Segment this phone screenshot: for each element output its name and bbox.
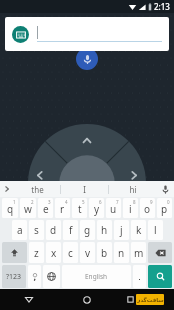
staticText: d <box>50 223 57 237</box>
staticText: 8 <box>133 199 136 205</box>
button[interactable]: k <box>131 220 146 240</box>
button[interactable]: 2 <box>20 198 36 218</box>
button[interactable]: v <box>80 242 95 263</box>
button[interactable]: Voice input <box>76 48 98 70</box>
button[interactable]: Back <box>0 289 58 310</box>
button[interactable]: x <box>46 242 61 263</box>
staticText: 5 <box>82 199 85 205</box>
button[interactable]: Keyboard <box>12 26 29 43</box>
staticText: 9 <box>150 199 153 205</box>
button[interactable]: the <box>14 181 60 197</box>
button[interactable]: 7 <box>106 198 121 218</box>
button[interactable]: 8 <box>123 198 138 218</box>
staticText: v <box>85 246 91 260</box>
button[interactable]: 3 <box>38 198 53 218</box>
staticText: 0 <box>167 199 170 205</box>
staticText: e <box>43 202 49 216</box>
staticText: 3 <box>48 199 51 205</box>
staticText: q <box>7 202 14 216</box>
staticText: 4 <box>65 199 68 205</box>
button[interactable]: I <box>61 181 108 197</box>
staticText: l <box>154 223 157 237</box>
button[interactable]: j <box>114 220 129 240</box>
staticText: p <box>161 202 168 216</box>
staticText: k <box>136 223 142 237</box>
button[interactable]: Recent apps <box>116 289 174 310</box>
staticText: I <box>83 184 86 195</box>
staticText: s <box>34 223 39 237</box>
button[interactable]: a <box>12 220 27 240</box>
button[interactable]: Search <box>148 265 172 288</box>
staticText: c <box>68 246 73 260</box>
staticText: b <box>101 246 108 260</box>
staticText: u <box>110 202 117 216</box>
button[interactable]: z <box>29 242 44 263</box>
staticText: hi <box>129 184 137 195</box>
staticText: 2 <box>31 199 34 205</box>
staticText: h <box>101 223 108 237</box>
button[interactable]: More suggestions <box>0 181 14 197</box>
staticText: a <box>17 223 23 237</box>
button[interactable]: Period <box>133 265 146 288</box>
staticText: g <box>84 223 91 237</box>
button[interactable]: b <box>97 242 112 263</box>
button[interactable]: ?123 <box>2 265 26 288</box>
button[interactable]: Shift <box>2 242 27 263</box>
staticText: w <box>24 202 32 216</box>
button[interactable]: 4 <box>55 198 70 218</box>
button[interactable]: 5 <box>72 198 87 218</box>
staticText: n <box>118 246 125 260</box>
staticText: x <box>51 246 57 260</box>
button[interactable]: Change language <box>43 265 60 288</box>
staticText: f <box>69 223 73 237</box>
button[interactable]: n <box>114 242 129 263</box>
staticText: 1 <box>13 199 16 205</box>
staticText: i <box>129 202 132 216</box>
staticText: o <box>144 202 151 216</box>
button[interactable]: Emoji and comma <box>28 265 41 288</box>
button[interactable]: Backspace <box>148 242 172 263</box>
staticText: y <box>94 202 100 216</box>
staticText: t <box>78 202 82 216</box>
staticText: r <box>60 202 65 216</box>
button[interactable]: 6 <box>89 198 104 218</box>
button[interactable]: Home <box>58 289 116 310</box>
button[interactable]: English <box>62 265 131 288</box>
button[interactable]: Voice typing <box>156 181 174 197</box>
button[interactable]: l <box>148 220 163 240</box>
staticText: m <box>134 246 144 260</box>
staticText: 7 <box>116 199 119 205</box>
button[interactable]: s <box>29 220 44 240</box>
button[interactable]: 1 <box>2 198 18 218</box>
staticText: English <box>85 272 108 281</box>
staticText: z <box>34 246 39 260</box>
button[interactable]: Keyboard <box>5 17 169 51</box>
button[interactable]: 0 <box>157 198 172 218</box>
staticText: j <box>120 223 123 237</box>
button[interactable]: d <box>46 220 61 240</box>
button[interactable]: 9 <box>140 198 155 218</box>
staticText: 6 <box>99 199 102 205</box>
button[interactable]: hi <box>109 181 156 197</box>
button[interactable]: h <box>97 220 112 240</box>
button[interactable]: m <box>131 242 146 263</box>
staticText: the <box>31 184 44 195</box>
staticText: سافت‌گذر <box>137 297 164 303</box>
staticText: 2:13 <box>154 1 170 12</box>
button[interactable]: g <box>80 220 95 240</box>
staticText: ?123 <box>6 272 22 282</box>
button[interactable]: c <box>63 242 78 263</box>
button[interactable]: f <box>63 220 78 240</box>
